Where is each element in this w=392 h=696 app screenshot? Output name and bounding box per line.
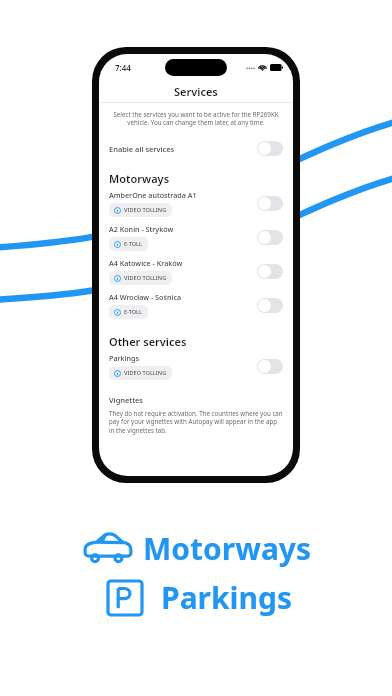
button[interactable]: Enable all services <box>99 138 293 159</box>
button[interactable]: VIDEO TOLLING <box>109 366 172 380</box>
staticText: Parkings <box>161 577 293 618</box>
button[interactable]: Parkings <box>99 351 293 382</box>
button[interactable]: A4 Katowice - Kraków <box>99 256 293 287</box>
staticText: E-TOLL <box>124 308 143 316</box>
staticText: VIDEO TOLLING <box>124 206 167 214</box>
button[interactable]: E-TOLL <box>109 237 148 251</box>
button[interactable]: Toggle service <box>257 196 283 211</box>
button[interactable]: A2 Konin - Stryków <box>99 222 293 253</box>
button[interactable]: E-TOLL <box>109 305 148 319</box>
button[interactable]: VIDEO TOLLING <box>109 271 172 285</box>
staticText: A4 Katowice - Kraków <box>109 258 183 268</box>
staticText: Select the services you want to be activ… <box>113 110 279 126</box>
staticText: Parkings <box>109 353 139 363</box>
staticText: Motorways <box>109 171 170 186</box>
staticText: VIDEO TOLLING <box>124 274 167 282</box>
staticText: Enable all services <box>109 144 175 154</box>
staticText: Services <box>174 84 218 99</box>
button[interactable]: Toggle service <box>257 359 283 374</box>
staticText: A4 Wrocław - Sośnica <box>109 292 182 302</box>
button[interactable]: AmberOne autostrada A1 <box>99 188 293 219</box>
staticText: Vignettes <box>109 395 143 405</box>
staticText: A2 Konin - Stryków <box>109 224 174 234</box>
button[interactable]: Toggle service <box>257 230 283 245</box>
staticText: Other services <box>109 334 187 349</box>
button[interactable]: Toggle service <box>257 264 283 279</box>
button[interactable]: Toggle service <box>257 141 283 156</box>
button[interactable]: A4 Wrocław - Sośnica <box>99 290 293 321</box>
staticText: Motorways <box>143 528 312 569</box>
button[interactable]: Toggle service <box>257 298 283 313</box>
button[interactable]: VIDEO TOLLING <box>109 203 172 217</box>
staticText: They do not require activation. The coun… <box>109 409 283 434</box>
staticText: E-TOLL <box>124 240 143 248</box>
staticText: AmberOne autostrada A1 <box>109 190 197 200</box>
staticText: 7:44 <box>115 62 131 73</box>
staticText: VIDEO TOLLING <box>124 369 167 377</box>
